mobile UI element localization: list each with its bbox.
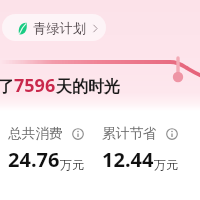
staticText: 了 xyxy=(0,77,14,97)
staticText: 天的时光 xyxy=(56,77,120,97)
staticText: 7596 xyxy=(14,73,56,98)
other: 说明 xyxy=(166,128,178,140)
staticText: 青绿计划 xyxy=(33,20,87,37)
staticText: 12.44 xyxy=(102,146,154,173)
other: 青绿计划 xyxy=(18,22,27,35)
button[interactable]: 累计节省 xyxy=(102,125,192,169)
other: 说明 xyxy=(72,128,84,140)
staticText: 24.76 xyxy=(8,146,60,173)
staticText: 累计节省 xyxy=(102,125,157,142)
staticText: 万元 xyxy=(60,157,84,172)
button[interactable]: 青绿计划 xyxy=(2,14,106,41)
button[interactable]: 总共消费 xyxy=(8,125,108,169)
staticText: 万元 xyxy=(154,157,178,172)
staticText: 总共消费 xyxy=(8,125,63,142)
